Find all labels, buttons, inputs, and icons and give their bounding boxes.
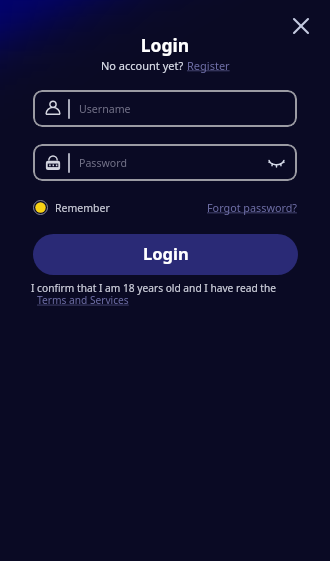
button[interactable]: Close (288, 13, 314, 39)
button[interactable]: Username (33, 90, 297, 127)
staticText: Login (143, 242, 189, 264)
staticText: Password (79, 156, 127, 170)
button[interactable]: Terms and Services (37, 293, 129, 307)
button[interactable]: Show password (266, 153, 286, 173)
staticText: No account yet? (101, 58, 187, 73)
staticText: I confirm that I am 18 years old and I h… (31, 281, 277, 295)
button[interactable]: Password (33, 144, 297, 181)
staticText: Username (79, 102, 131, 116)
button[interactable]: Login (33, 234, 298, 275)
button[interactable]: Register (187, 58, 230, 73)
button[interactable]: Forgot password? (207, 200, 297, 215)
staticText: Remember (55, 201, 110, 215)
staticText: Login (0, 33, 330, 57)
button[interactable]: Remember (33, 200, 110, 215)
